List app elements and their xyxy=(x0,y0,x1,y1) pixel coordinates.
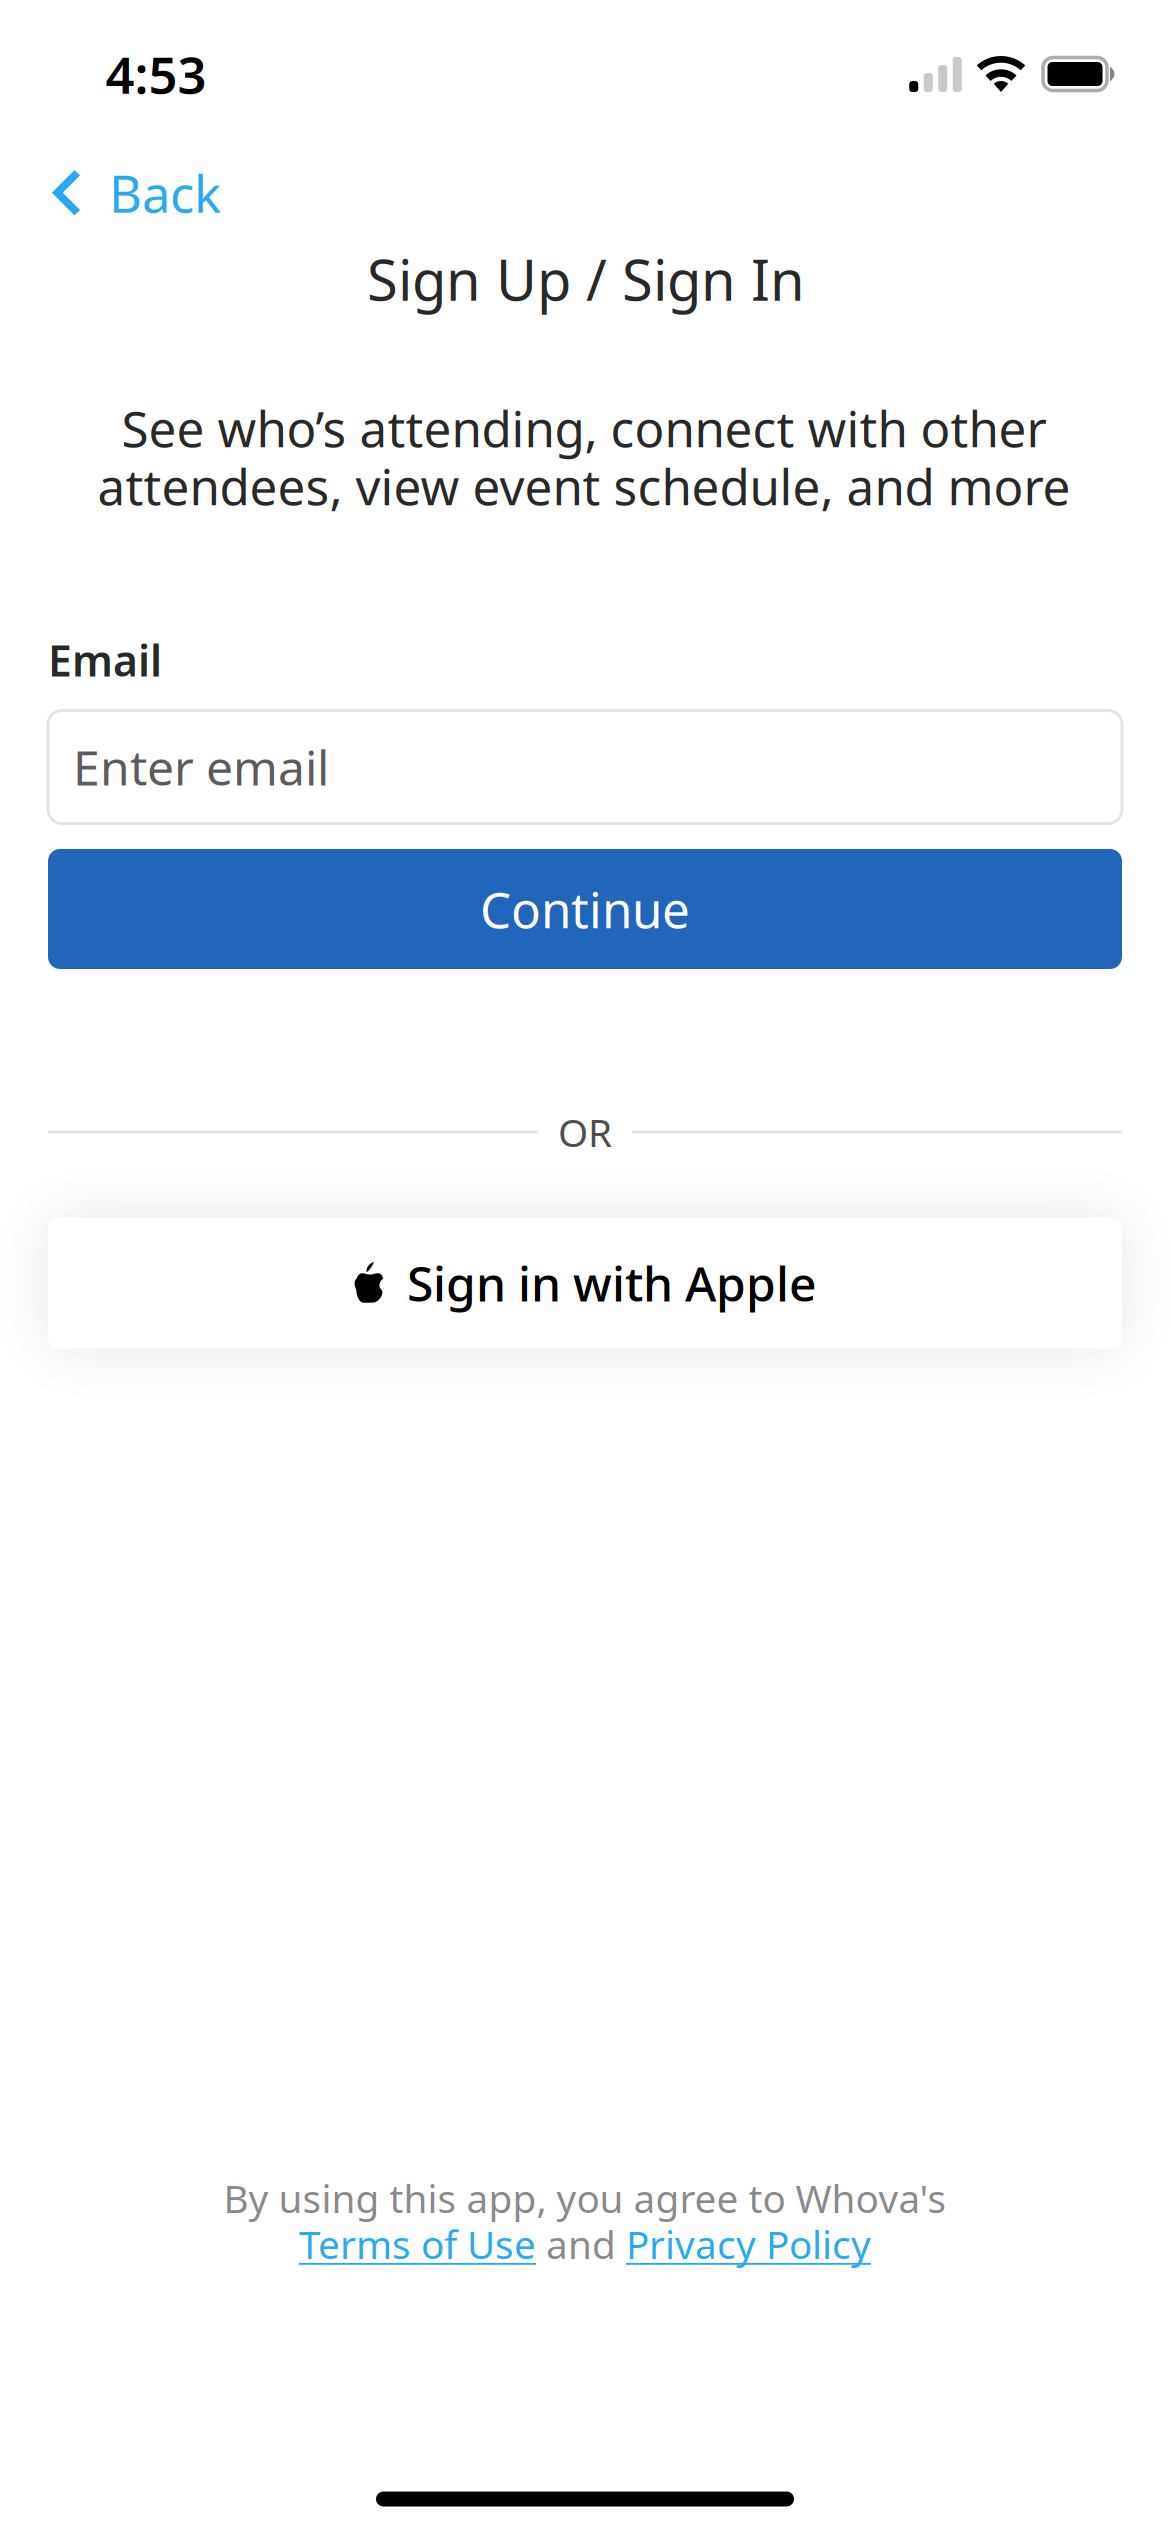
staticText: By using this app, you agree to Whova's xyxy=(223,2172,946,2224)
staticText: Sign Up / Sign In xyxy=(367,242,805,316)
staticText: See who’s attending, connect with other xyxy=(121,395,1046,461)
staticText: Terms of Use xyxy=(299,2218,536,2270)
staticText: 4:53 xyxy=(105,40,206,108)
staticText: Enter email xyxy=(73,735,329,799)
button[interactable]: Email address xyxy=(48,710,1122,823)
button[interactable]: Continue xyxy=(48,849,1122,969)
staticText: attendees, view event schedule, and more xyxy=(97,453,1070,519)
staticText: Continue xyxy=(480,876,690,942)
button[interactable]: Privacy Policy xyxy=(626,2218,871,2270)
staticText: Sign in with Apple xyxy=(407,1251,817,1315)
staticText: OR xyxy=(558,1106,612,1158)
staticText: Back xyxy=(109,159,221,227)
staticText: Privacy Policy xyxy=(626,2218,871,2270)
button[interactable]: Sign in with Apple xyxy=(48,1217,1122,1348)
button[interactable]: Back xyxy=(52,145,296,241)
staticText: and xyxy=(536,2218,626,2270)
staticText: Email xyxy=(48,632,162,688)
button[interactable]: Terms of Use xyxy=(299,2218,536,2270)
